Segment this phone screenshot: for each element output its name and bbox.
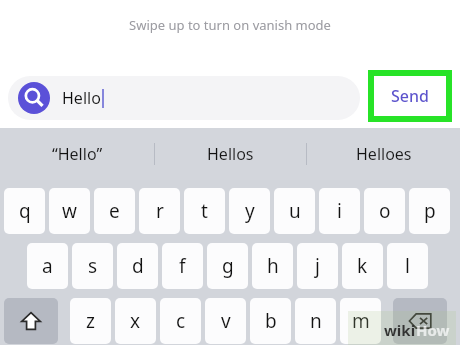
staticText: z — [86, 308, 95, 334]
button[interactable]: Backspace — [393, 298, 447, 344]
staticText: b — [265, 308, 277, 334]
button[interactable]: a — [27, 243, 68, 289]
staticText: i — [337, 198, 342, 224]
button[interactable]: w — [49, 188, 90, 234]
button[interactable]: z — [70, 298, 111, 344]
button[interactable]: u — [274, 188, 315, 234]
staticText: q — [19, 198, 31, 224]
staticText: How — [416, 320, 450, 340]
staticText: Hello — [62, 87, 101, 109]
staticText: wiki — [384, 320, 416, 340]
staticText: g — [222, 253, 234, 279]
button[interactable]: h — [252, 243, 293, 289]
staticText: w — [62, 198, 77, 224]
staticText: Swipe up to turn on vanish mode — [129, 16, 331, 34]
staticText: d — [132, 253, 144, 279]
button[interactable]: s — [72, 243, 113, 289]
staticText: Send — [391, 85, 429, 107]
staticText: f — [179, 253, 186, 279]
button[interactable]: Shift — [4, 298, 58, 344]
button[interactable]: b — [250, 298, 291, 344]
button[interactable]: k — [342, 243, 383, 289]
button[interactable]: o — [364, 188, 405, 234]
staticText: s — [88, 253, 98, 279]
staticText: c — [176, 308, 186, 334]
button[interactable]: j — [297, 243, 338, 289]
staticText: Hellos — [207, 143, 254, 165]
staticText: u — [289, 198, 301, 224]
button[interactable]: v — [205, 298, 246, 344]
button[interactable]: Helloes — [307, 128, 460, 180]
button[interactable]: r — [139, 188, 180, 234]
button[interactable]: “Hello” — [0, 128, 154, 180]
button[interactable]: n — [295, 298, 336, 344]
staticText: “Hello” — [52, 143, 103, 165]
button[interactable]: Hellos — [154, 128, 307, 180]
staticText: n — [310, 308, 322, 334]
button[interactable]: e — [94, 188, 135, 234]
staticText: t — [201, 198, 208, 224]
button[interactable]: p — [409, 188, 450, 234]
staticText: r — [156, 198, 164, 224]
staticText: v — [221, 308, 231, 334]
staticText: l — [405, 253, 410, 279]
staticText: e — [109, 198, 120, 224]
staticText: p — [424, 198, 436, 224]
button[interactable]: t — [184, 188, 225, 234]
button[interactable]: g — [207, 243, 248, 289]
button[interactable]: Search — [18, 82, 50, 114]
button[interactable]: c — [160, 298, 201, 344]
button[interactable]: y — [229, 188, 270, 234]
button[interactable]: x — [115, 298, 156, 344]
button[interactable]: q — [4, 188, 45, 234]
staticText: a — [42, 253, 53, 279]
staticText: o — [379, 198, 391, 224]
button[interactable]: d — [117, 243, 158, 289]
staticText: y — [245, 198, 255, 224]
button[interactable]: m — [340, 298, 381, 344]
staticText: Helloes — [356, 143, 412, 165]
button[interactable]: f — [162, 243, 203, 289]
staticText: h — [267, 253, 279, 279]
staticText: k — [357, 253, 368, 279]
button[interactable]: Send — [374, 76, 446, 116]
button[interactable]: i — [319, 188, 360, 234]
staticText: x — [130, 308, 141, 334]
staticText: j — [315, 253, 320, 279]
button[interactable]: l — [387, 243, 428, 289]
staticText: m — [352, 308, 370, 334]
